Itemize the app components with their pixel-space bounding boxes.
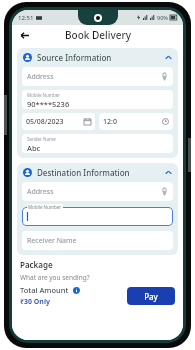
button[interactable]: Address [22,182,173,201]
staticText: Address [27,187,54,197]
staticText: Destination Information [37,167,130,178]
button[interactable]: Destination Information [17,163,178,182]
staticText: Pay [144,291,158,302]
button[interactable]: Pay [127,287,175,305]
button[interactable]: Receiver Name [22,231,173,250]
staticText: 90****5236 [27,99,70,107]
staticText: Book Delivery [65,28,131,42]
staticText: 05/08/2023 [26,117,64,127]
staticText: Package [20,259,53,270]
button[interactable]: Amount info [72,286,80,294]
staticText: 12:51 [18,14,34,22]
button[interactable]: Sender Name [22,134,173,153]
staticText: 12:0 [103,117,117,127]
staticText: Abc [27,143,41,151]
staticText: Source Information [37,52,112,63]
staticText: ₹30 Only [20,297,51,307]
staticText: Sender Name [27,136,56,142]
staticText: 90% [157,14,168,21]
button[interactable]: 12:0 [99,113,173,130]
staticText: Address [27,72,54,82]
staticText: Total Amount [20,285,69,295]
staticText: Receiver Name [27,236,77,246]
button[interactable]: Address [22,67,173,86]
button[interactable]: 05/08/2023 [22,113,95,130]
staticText: Mobile Number [28,204,62,210]
button[interactable] [22,207,173,226]
staticText: Mobile Number [27,92,61,98]
button[interactable]: Back [16,27,32,43]
button[interactable]: What are you sending? [20,273,90,282]
button[interactable]: Source Information [17,48,178,67]
button[interactable]: Mobile Number [22,90,173,109]
